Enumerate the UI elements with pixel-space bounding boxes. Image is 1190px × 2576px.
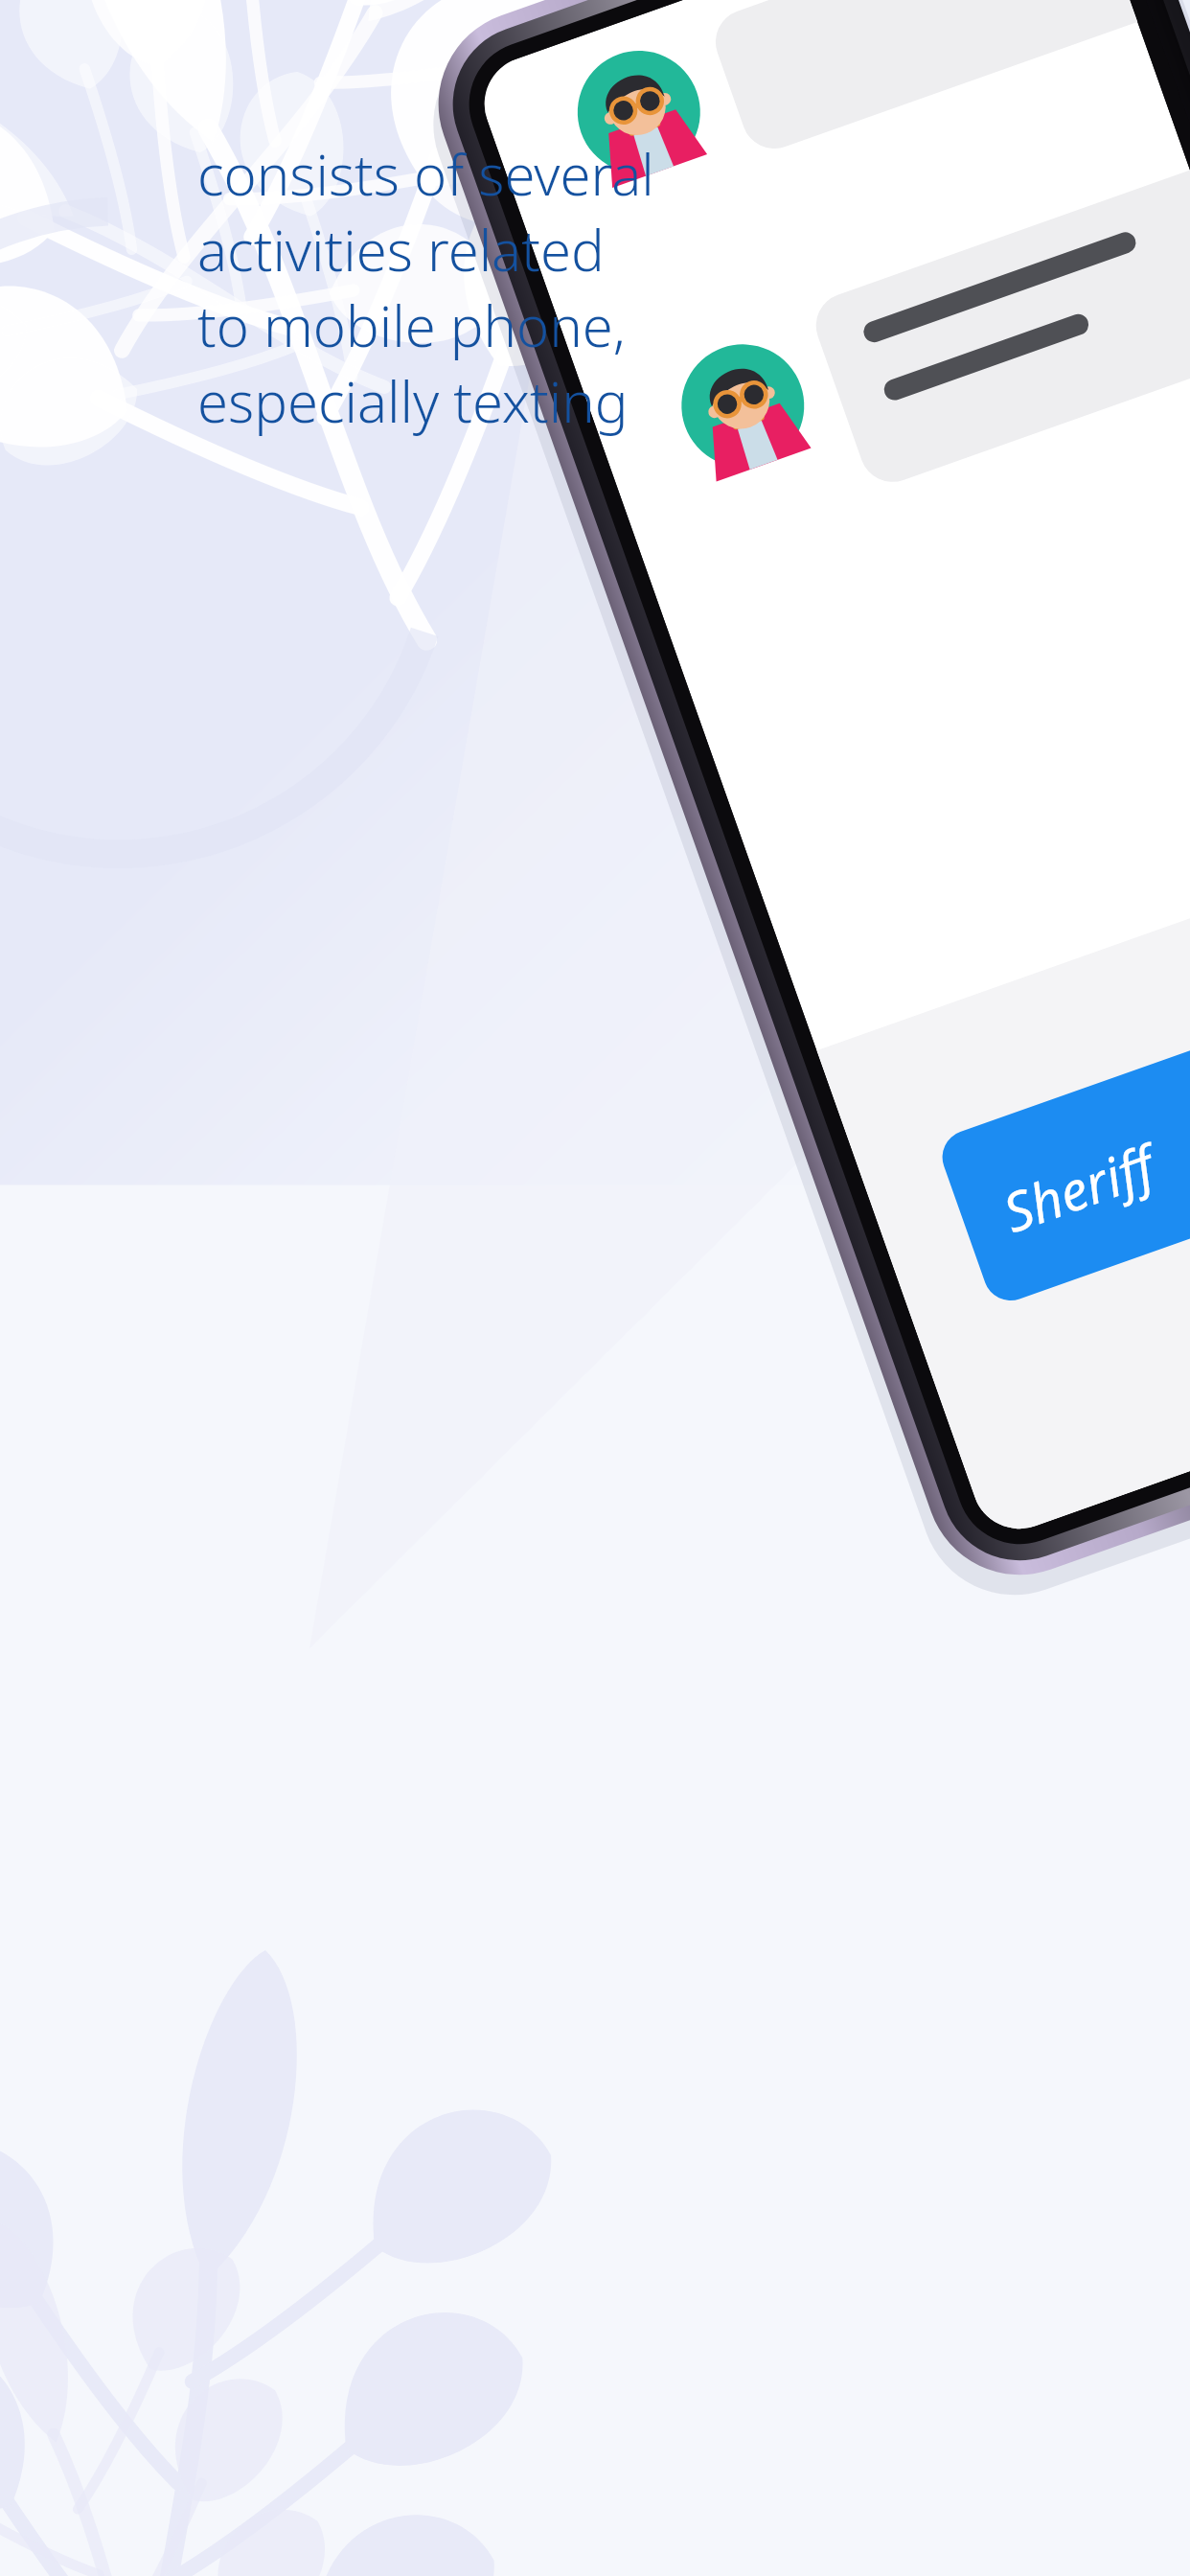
staticText: especially texting <box>197 363 629 439</box>
staticText: consists of several <box>197 136 654 212</box>
staticText: activities related <box>197 212 605 287</box>
button[interactable]: Headline <box>197 136 654 439</box>
staticText: to mobile phone, <box>197 287 626 363</box>
